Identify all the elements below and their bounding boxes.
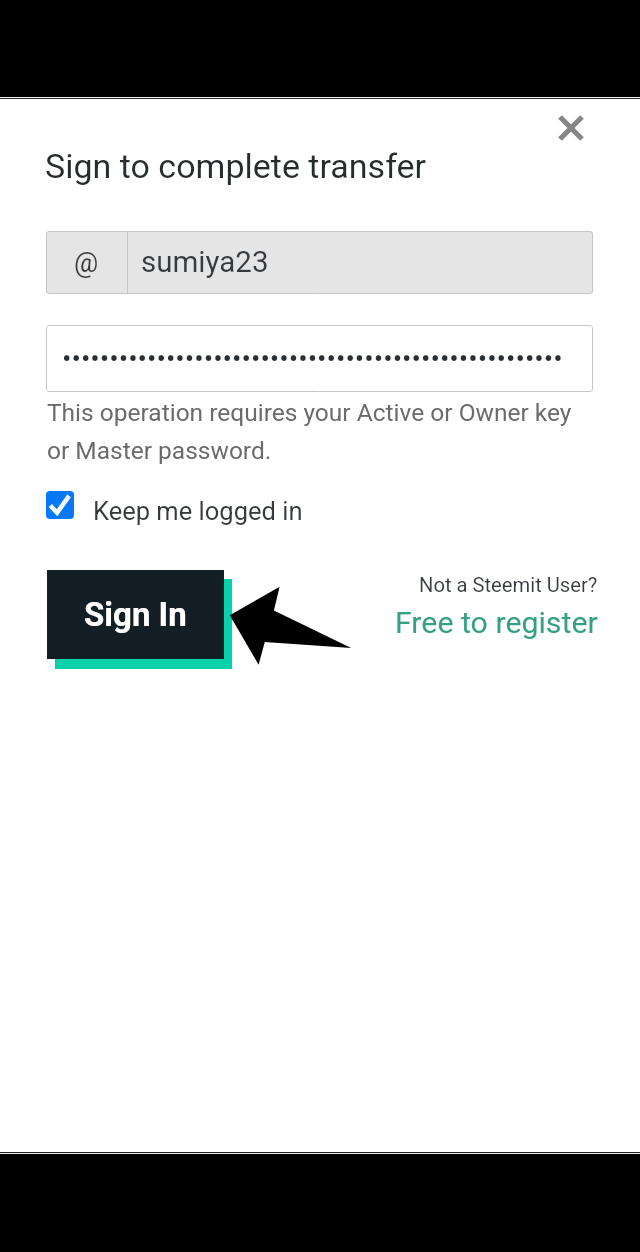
- button[interactable]: Keep me logged in: [46, 487, 303, 525]
- button[interactable]: Sign In: [47, 570, 224, 659]
- button[interactable]: Free to register: [395, 605, 598, 641]
- staticText: @: [74, 247, 99, 279]
- staticText: This operation requires your Active or O…: [47, 398, 572, 465]
- staticText: Keep me logged in: [93, 496, 303, 526]
- button[interactable]: @: [46, 231, 593, 294]
- button[interactable]: Close: [545, 102, 597, 154]
- staticText: Not a Steemit User?: [419, 573, 598, 597]
- staticText: sumiya23: [141, 245, 269, 280]
- staticText: ••••••••••••••••••••••••••••••••••••••••…: [62, 342, 563, 375]
- button[interactable]: ••••••••••••••••••••••••••••••••••••••••…: [46, 325, 593, 392]
- staticText: Sign In: [84, 595, 187, 634]
- staticText: Sign to complete transfer: [45, 146, 427, 186]
